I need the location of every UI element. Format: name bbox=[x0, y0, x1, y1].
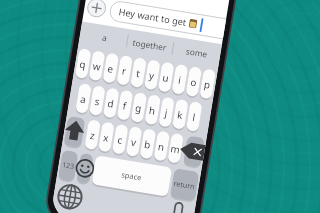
button[interactable]: Phone displaying iOS keyboard with a tex… bbox=[0, 0, 320, 213]
